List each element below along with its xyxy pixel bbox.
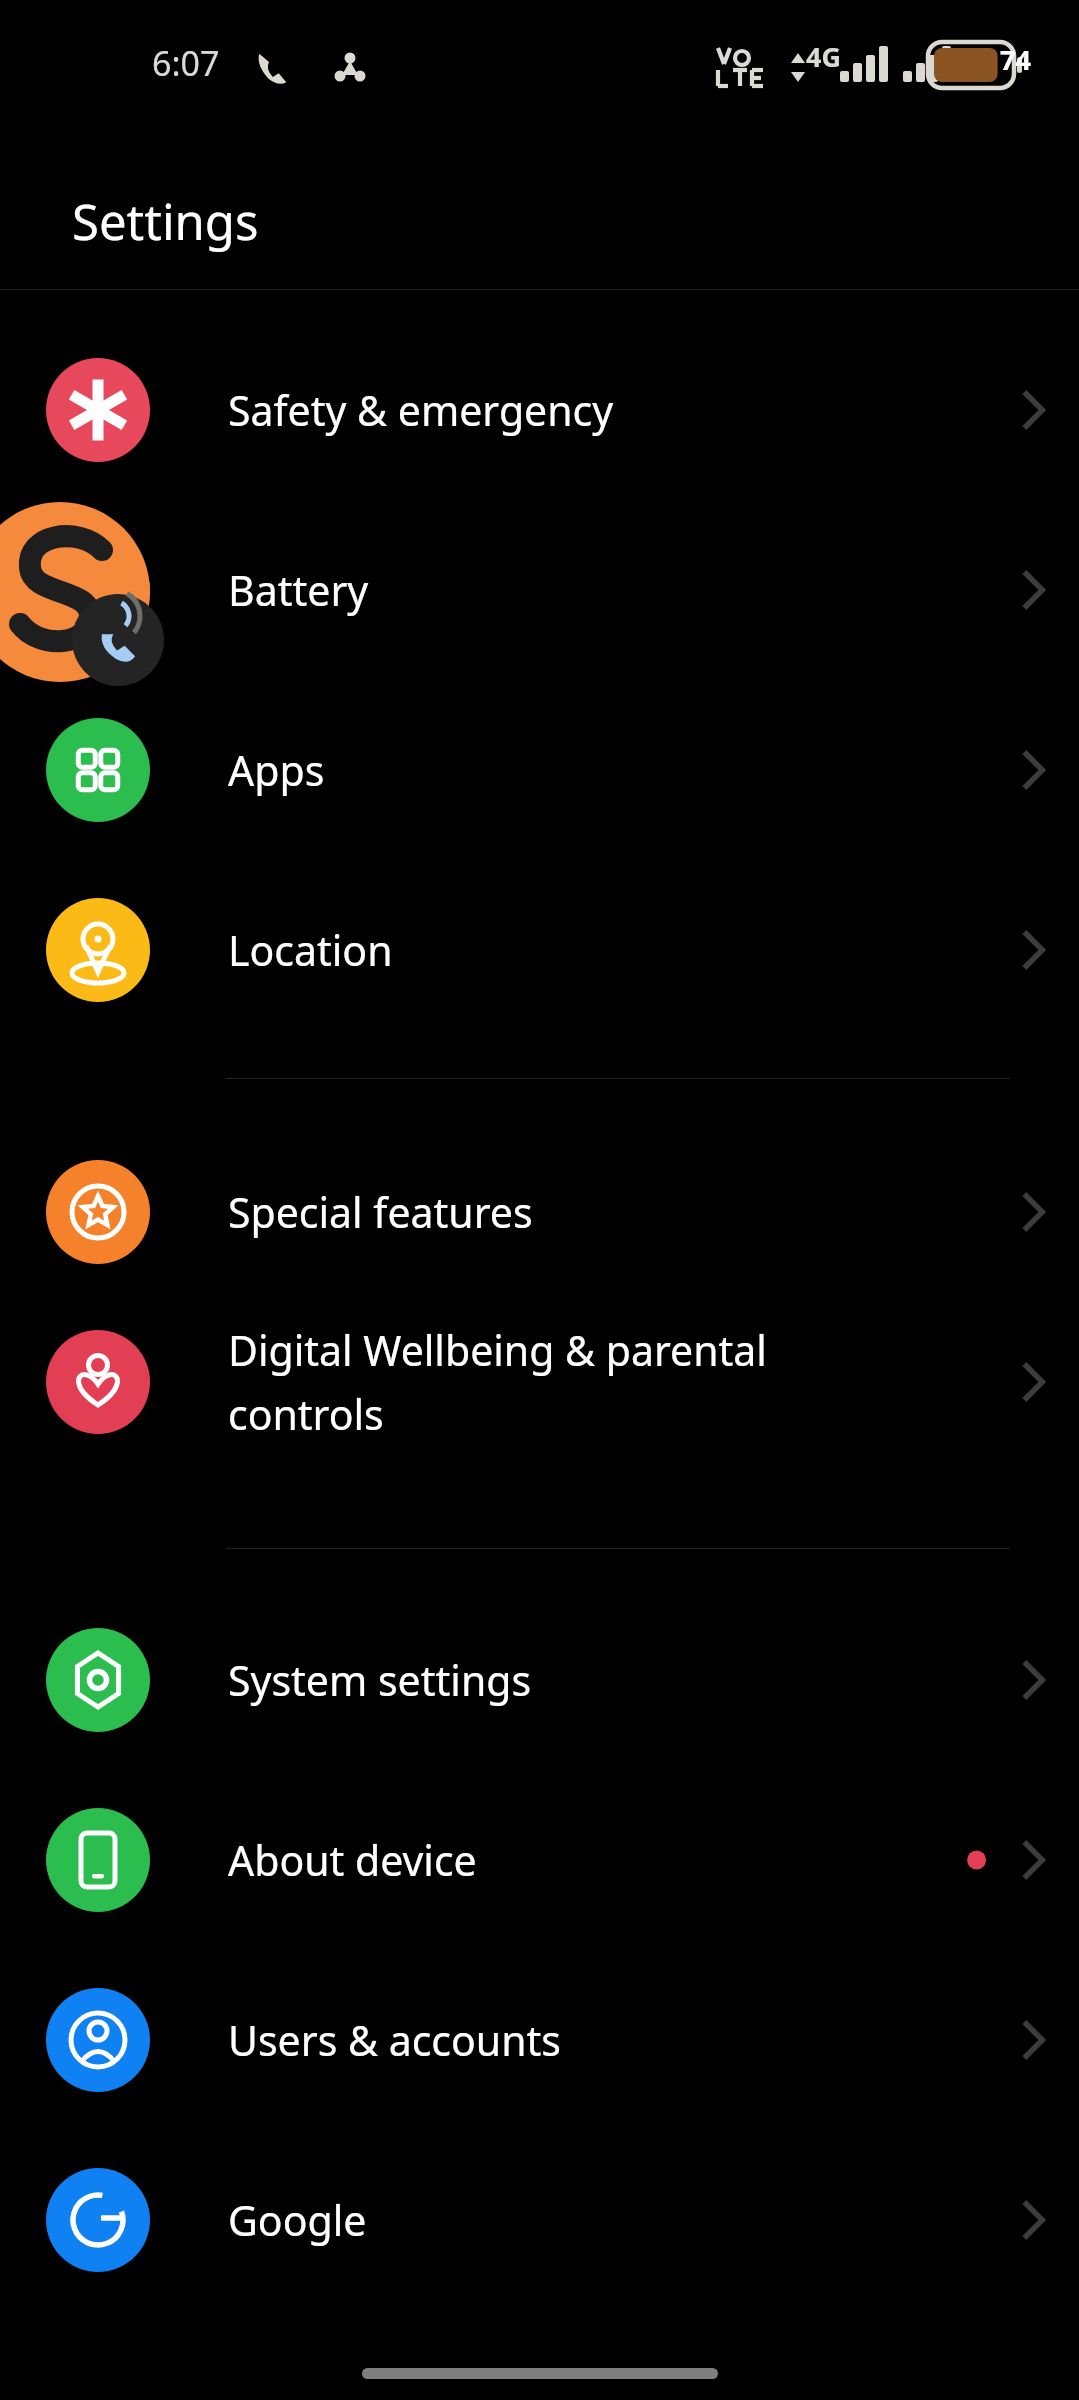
button[interactable]: Users & accounts bbox=[0, 1950, 1079, 2130]
staticText: Settings bbox=[72, 188, 259, 255]
button[interactable]: System settings bbox=[0, 1590, 1079, 1770]
staticText: Google bbox=[228, 2192, 367, 2248]
staticText: 6:07 bbox=[152, 40, 220, 86]
staticText: About device bbox=[228, 1832, 477, 1888]
button[interactable]: Safety & emergency bbox=[0, 320, 1079, 500]
button[interactable]: Battery bbox=[0, 500, 1079, 680]
button[interactable]: About device bbox=[0, 1770, 1079, 1950]
button[interactable]: Google bbox=[0, 2130, 1079, 2310]
staticText: Digital Wellbeing & parental bbox=[228, 1322, 767, 1378]
button[interactable]: Location bbox=[0, 860, 1079, 1040]
button[interactable]: Ongoing call bubble bbox=[0, 0, 1079, 2400]
button[interactable]: Apps bbox=[0, 680, 1079, 860]
button[interactable]: Digital Wellbeing & parental bbox=[0, 1282, 1079, 1482]
staticText: System settings bbox=[228, 1652, 532, 1708]
staticText: Users & accounts bbox=[228, 2012, 561, 2068]
staticText: Special features bbox=[228, 1184, 533, 1240]
button[interactable]: Special features bbox=[0, 1122, 1079, 1302]
staticText: Battery bbox=[228, 562, 369, 618]
staticText: Safety & emergency bbox=[228, 382, 614, 438]
staticText: 74 bbox=[1000, 41, 1031, 78]
staticText: Apps bbox=[228, 742, 325, 798]
staticText: Location bbox=[228, 922, 393, 978]
staticText: controls bbox=[228, 1386, 384, 1442]
staticText: 4G bbox=[806, 38, 841, 75]
